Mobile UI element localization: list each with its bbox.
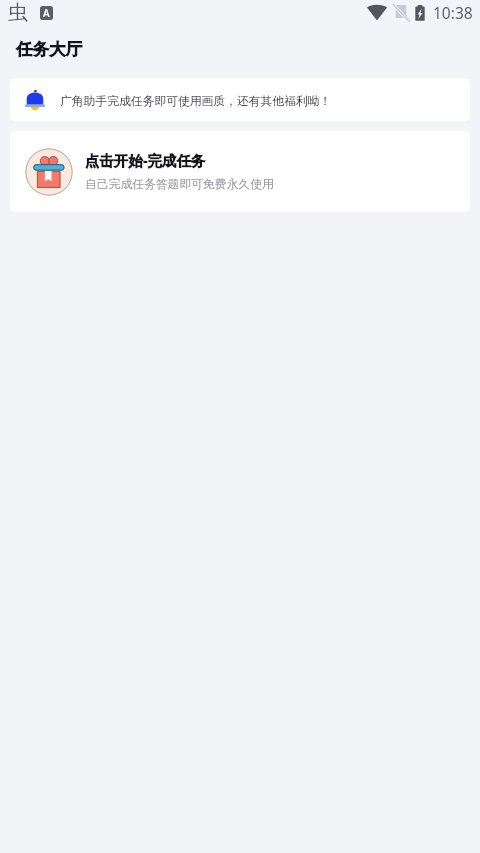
staticText: A — [43, 6, 50, 20]
other: Announcement — [25, 90, 45, 111]
other: Reward gift — [25, 148, 73, 196]
staticText: 广角助手完成任务即可使用画质，还有其他福利呦！ — [60, 94, 332, 109]
other: Battery charging — [415, 5, 425, 21]
other: Wi-Fi signal — [367, 5, 387, 20]
staticText: 虫 — [8, 0, 28, 25]
staticText: 自己完成任务答题即可免费永久使用 — [85, 177, 274, 192]
other: No mobile signal — [395, 4, 407, 19]
staticText: 点击开始-完成任务 — [85, 150, 206, 170]
staticText: 10:38 — [433, 2, 473, 23]
staticText: 任务大厅 — [16, 39, 82, 60]
button[interactable]: Announcement — [10, 78, 470, 121]
button[interactable]: Reward gift — [10, 131, 470, 212]
